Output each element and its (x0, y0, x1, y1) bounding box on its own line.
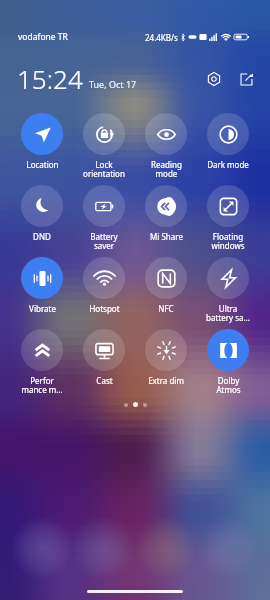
staticText: Perfor mance m… (21, 375, 63, 396)
staticText: Lock orientation (83, 159, 125, 180)
button[interactable]: Extra dim (135, 329, 197, 386)
button[interactable]: Vibrate (11, 257, 73, 314)
button[interactable]: Location (11, 113, 73, 170)
button[interactable]: Dark mode (197, 113, 259, 170)
staticText: Extra dim (148, 375, 184, 386)
button[interactable]: Battery saver (73, 185, 135, 252)
staticText: 24.4KB/s (145, 32, 178, 43)
staticText: 15:24 (17, 61, 83, 96)
button[interactable]: Hotspot (73, 257, 135, 314)
staticText: Reading mode (151, 159, 182, 180)
button[interactable]: Ultra battery sa… (197, 257, 259, 324)
button[interactable]: Mi Share (135, 185, 197, 242)
staticText: Location (26, 159, 59, 170)
staticText: DND (33, 231, 51, 242)
staticText: Battery saver (90, 231, 118, 252)
button[interactable]: Edit quick settings (235, 68, 257, 90)
staticText: Cast (96, 375, 113, 386)
button[interactable]: Lock orientation (73, 113, 135, 180)
staticText: NFC (158, 303, 174, 314)
button[interactable]: Cast (73, 329, 135, 386)
staticText: Dark mode (207, 159, 249, 170)
staticText: Hotspot (89, 303, 120, 314)
staticText: Vibrate (29, 303, 56, 314)
staticText: Ultra battery sa… (206, 303, 250, 324)
button[interactable]: NFC (135, 257, 197, 314)
button[interactable]: Settings (203, 68, 225, 90)
staticText: Mi Share (150, 231, 183, 242)
button[interactable]: Floating windows (197, 185, 259, 252)
button[interactable]: DND (11, 185, 73, 242)
staticText: Floating windows (211, 231, 245, 252)
staticText: Tue, Oct 17 (89, 78, 137, 90)
button[interactable]: Perfor mance m… (11, 329, 73, 396)
staticText: Dolby Atmos (216, 375, 241, 396)
staticText: vodafone TR (18, 31, 68, 43)
button[interactable]: Reading mode (135, 113, 197, 180)
button[interactable]: Dolby Atmos (197, 329, 259, 396)
